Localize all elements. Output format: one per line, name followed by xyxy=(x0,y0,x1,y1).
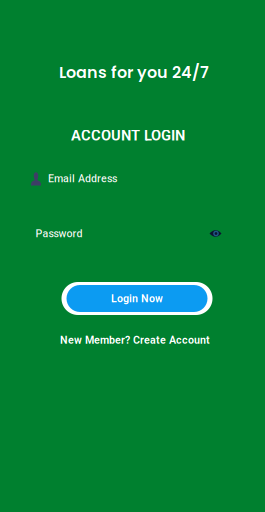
button[interactable]: New Member? Create Account xyxy=(60,333,210,347)
staticText: Loans for you 24/7 xyxy=(59,61,209,84)
staticText: Email Address xyxy=(48,172,117,185)
button[interactable]: Login Now xyxy=(61,282,212,315)
staticText: Login Now xyxy=(111,292,163,305)
staticText: ACCOUNT LOGIN xyxy=(71,127,185,144)
staticText: Password xyxy=(35,227,82,240)
staticText: New Member? Create Account xyxy=(60,334,210,346)
